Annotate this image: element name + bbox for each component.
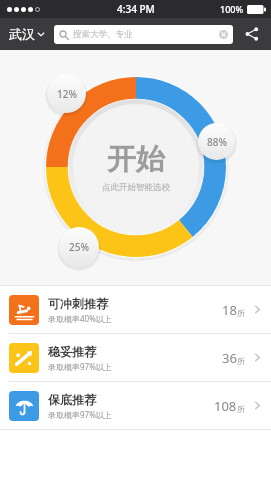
staticText: 所	[237, 356, 245, 366]
staticText: 保底推荐	[48, 392, 96, 407]
staticText: 录取概率40%以上	[48, 313, 112, 324]
button[interactable]: 可冲刺推荐	[0, 286, 271, 333]
staticText: 12%	[57, 87, 77, 101]
staticText: 录取概率97%以上	[48, 409, 112, 420]
button[interactable]: 保底推荐	[0, 382, 271, 429]
staticText: 武汉	[9, 26, 35, 42]
staticText: 100%	[220, 3, 244, 15]
staticText: 25%	[69, 240, 89, 254]
staticText: 开始	[107, 141, 165, 178]
button[interactable]: 武汉	[7, 21, 47, 47]
button[interactable]: 稳妥推荐	[0, 334, 271, 381]
button[interactable]: Clear search	[219, 30, 228, 39]
staticText: 18	[222, 301, 237, 319]
staticText: 所	[237, 308, 245, 318]
staticText: 108	[214, 397, 237, 415]
staticText: 4:34 PM	[117, 2, 155, 16]
button[interactable]: Share	[239, 21, 265, 47]
button[interactable]: 搜索大学、专业	[54, 25, 233, 44]
staticText: 所	[237, 404, 245, 414]
staticText: 36	[222, 349, 237, 367]
staticText: 稳妥推荐	[48, 344, 96, 359]
staticText: 可冲刺推荐	[48, 296, 108, 311]
staticText: 录取概率97%以上	[48, 361, 112, 372]
staticText: 搜索大学、专业	[73, 29, 219, 40]
staticText: 88%	[207, 135, 227, 149]
staticText: 点此开始智能选校	[102, 182, 170, 193]
button[interactable]: 开始 点此开始智能选校	[44, 75, 228, 259]
